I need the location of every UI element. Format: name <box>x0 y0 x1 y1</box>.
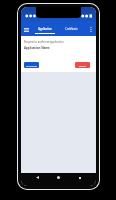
staticText: Authorise <box>26 64 37 67</box>
staticText: Reject <box>79 64 86 67</box>
staticText: Application <box>38 27 52 31</box>
staticText: Request to authorise application <box>24 40 64 44</box>
button[interactable]: Application <box>32 23 58 36</box>
staticText: Certificate <box>65 27 78 31</box>
button[interactable]: More options <box>85 23 96 36</box>
button[interactable]: Navigation menu <box>21 23 32 36</box>
button[interactable]: Back <box>33 173 42 182</box>
staticText: Application Name <box>24 46 50 50</box>
button[interactable]: Certificate <box>58 23 85 36</box>
button[interactable]: Authorise <box>24 62 39 68</box>
button[interactable]: Home <box>54 173 63 182</box>
button[interactable]: Reject <box>75 62 90 68</box>
button[interactable]: Recent apps <box>75 173 84 182</box>
